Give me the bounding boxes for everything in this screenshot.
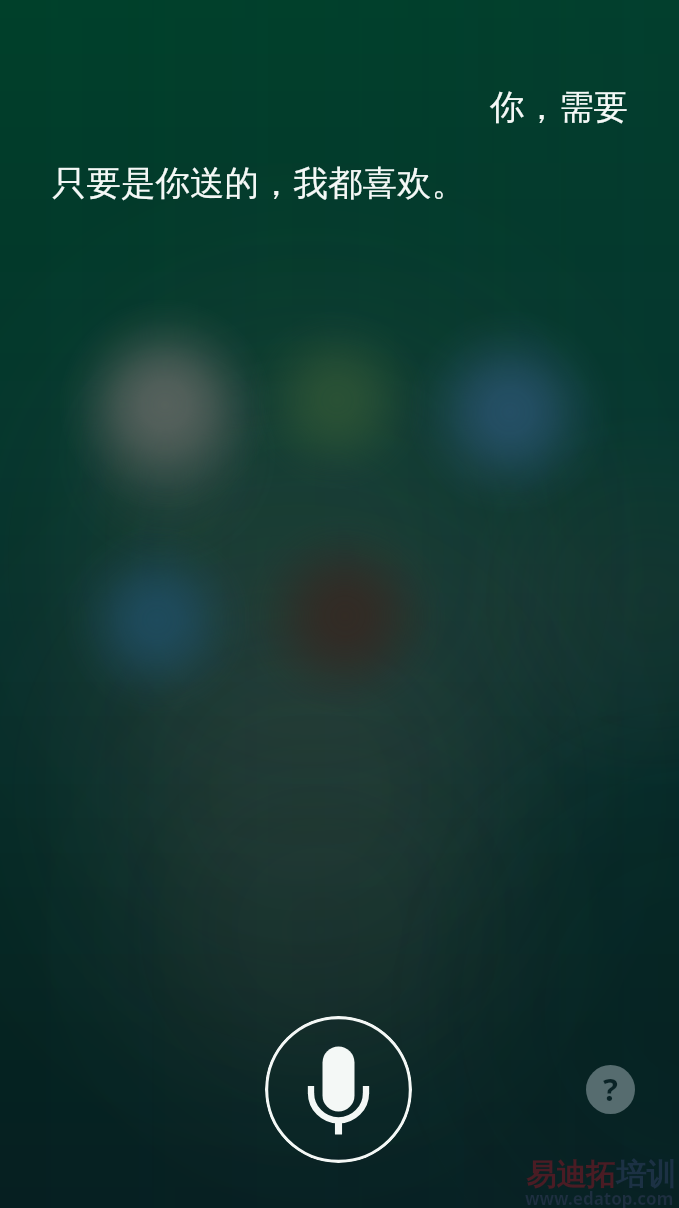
- button[interactable]: Voice input: [265, 1016, 412, 1163]
- staticText: 只要是你送的，我都喜欢。: [52, 162, 679, 205]
- staticText: 你，需要: [0, 86, 628, 129]
- staticText: ?: [603, 1068, 618, 1110]
- staticText: 培训: [616, 1156, 676, 1194]
- button[interactable]: Help: [586, 1065, 635, 1114]
- staticText: www.edatop.com: [525, 1187, 674, 1208]
- staticText: 易迪拓: [526, 1156, 616, 1194]
